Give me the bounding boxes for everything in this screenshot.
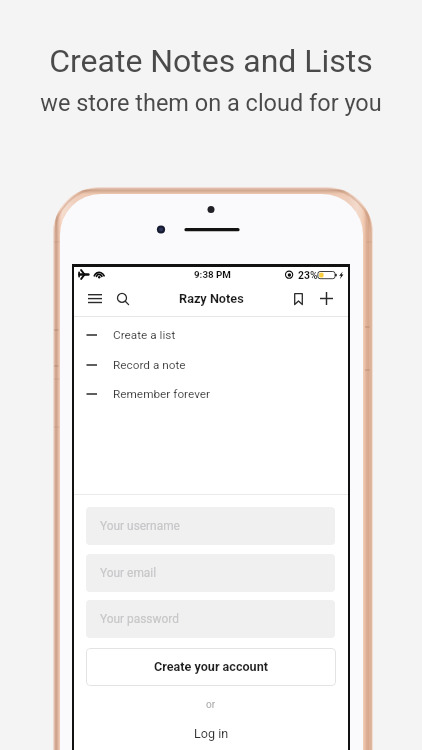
staticText: 9:38 PM: [194, 269, 231, 280]
staticText: or: [206, 699, 216, 711]
button[interactable]: Record a note: [74, 351, 348, 379]
staticText: Your password: [100, 612, 179, 626]
staticText: we store them on a cloud for you: [40, 89, 382, 117]
button[interactable]: Log in: [74, 725, 348, 742]
button[interactable]: Create your account: [86, 648, 336, 686]
staticText: Create your account: [154, 659, 268, 674]
staticText: Your email: [100, 566, 157, 580]
staticText: Remember forever: [113, 387, 211, 401]
staticText: Create Notes and Lists: [49, 42, 373, 80]
staticText: Create a list: [113, 328, 176, 342]
staticText: Razy Notes: [179, 291, 244, 306]
staticText: Your username: [100, 519, 180, 533]
button[interactable]: Search: [109, 286, 136, 311]
button[interactable]: Menu: [81, 286, 108, 311]
staticText: Record a note: [113, 358, 186, 372]
button[interactable]: Bookmarks: [285, 286, 312, 311]
button[interactable]: Your username: [86, 507, 335, 545]
button[interactable]: Your email: [86, 554, 335, 592]
button[interactable]: Create a list: [74, 321, 348, 349]
button[interactable]: Your password: [86, 600, 335, 638]
staticText: Log in: [194, 726, 229, 741]
button[interactable]: Remember forever: [74, 380, 348, 408]
staticText: 23%: [298, 269, 318, 281]
button[interactable]: Add note: [313, 286, 340, 311]
